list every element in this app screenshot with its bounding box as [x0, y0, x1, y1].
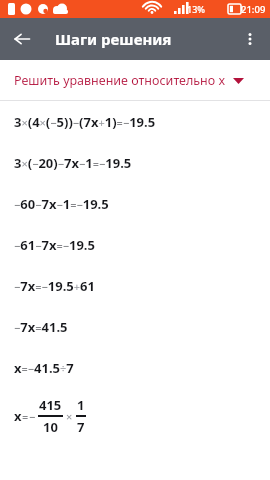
staticText: −	[29, 409, 36, 424]
staticText: −7x=41.5	[14, 318, 68, 336]
staticText: 1	[77, 396, 85, 414]
button[interactable]: Back	[6, 23, 38, 55]
staticText: 13%	[187, 3, 205, 15]
staticText: x=−41.5÷7	[14, 359, 74, 377]
staticText: Решить уравнение относительно x	[14, 72, 226, 89]
staticText: ×	[66, 409, 73, 424]
staticText: 21:09	[241, 3, 266, 16]
staticText: 7	[77, 418, 85, 436]
staticText: −61−7x=−19.5	[14, 236, 95, 254]
staticText: x	[14, 407, 22, 425]
staticText: 415	[39, 396, 62, 414]
staticText: =	[22, 409, 29, 424]
staticText: 10	[43, 418, 58, 436]
staticText: −7x=−19.5+61	[14, 277, 95, 295]
button[interactable]: More options	[234, 23, 266, 55]
button[interactable]: Решить уравнение относительно x	[0, 60, 270, 100]
staticText: −60−7x−1=−19.5	[14, 195, 109, 213]
staticText: 3×(4×(−5))−(7x+1)=−19.5	[14, 113, 156, 131]
staticText: Шаги решения	[55, 29, 172, 49]
staticText: 3×(−20)−7x−1=−19.5	[14, 154, 132, 172]
